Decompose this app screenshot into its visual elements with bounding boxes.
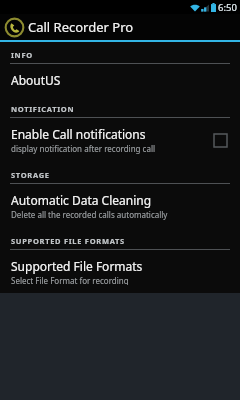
staticText: Call Recorder Pro (28, 18, 134, 36)
button[interactable]: Automatic Data Cleaning (0, 184, 240, 228)
other: App icon (5, 18, 24, 37)
staticText: INFO (11, 50, 33, 60)
staticText: Delete all the recorded calls automatica… (11, 209, 168, 220)
button[interactable]: Enable Call notifications (0, 118, 240, 162)
staticText: SUPPORTED FILE FORMATS (11, 236, 125, 246)
staticText: display notification after recording cal… (11, 143, 156, 154)
staticText: Select File Format for recording (11, 275, 129, 285)
staticText: Enable Call notifications (11, 126, 146, 142)
staticText: Supported File Formats (11, 258, 143, 274)
button[interactable]: App icon (0, 14, 240, 40)
staticText: Automatic Data Cleaning (11, 192, 152, 208)
staticText: NOTIFICATION (11, 104, 75, 114)
staticText: STORAGE (11, 170, 50, 180)
button[interactable]: Enable Call notifications checkbox (208, 128, 232, 152)
staticText: AboutUS (11, 72, 61, 88)
button[interactable]: Supported File Formats (0, 250, 240, 293)
button[interactable]: AboutUS (0, 64, 240, 96)
staticText: 6:50 (218, 1, 237, 14)
